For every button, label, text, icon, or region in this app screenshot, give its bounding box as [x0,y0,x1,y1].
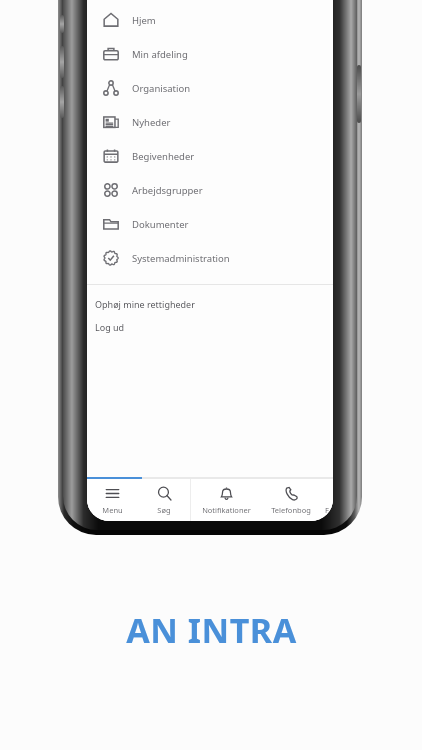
staticText: Arbejdsgrupper [132,184,203,197]
button[interactable]: Min afdeling [87,37,333,71]
button[interactable]: Dokumenter [87,207,333,241]
staticText: Søg [157,505,171,515]
button[interactable]: Nyheder [87,105,333,139]
button[interactable]: Menu [87,479,138,521]
button[interactable]: Søg [138,479,190,521]
button[interactable]: Notifikationer [191,479,261,521]
staticText: Menu [102,505,123,515]
staticText: F [325,505,329,515]
button[interactable]: Telefonbog [261,479,321,521]
staticText: Notifikationer [202,505,251,515]
staticText: Hjem [132,14,156,27]
staticText: Organisation [132,82,191,95]
button[interactable]: Begivenheder [87,139,333,173]
staticText: Nyheder [132,116,171,129]
button[interactable]: Log ud [87,315,333,338]
button[interactable]: Ophøj mine rettigheder [87,292,333,315]
button[interactable]: Arbejdsgrupper [87,173,333,207]
staticText: Systemadministration [132,252,230,265]
staticText: AN INTRA [126,607,297,653]
staticText: Log ud [95,321,125,333]
staticText: Ophøj mine rettigheder [95,298,195,310]
staticText: Telefonbog [271,505,311,515]
staticText: Begivenheder [132,150,195,163]
button[interactable]: Organisation [87,71,333,105]
button[interactable]: Hjem [87,3,333,37]
button[interactable]: F [321,479,333,521]
staticText: Dokumenter [132,218,189,231]
staticText: Min afdeling [132,48,188,61]
button[interactable]: Systemadministration [87,241,333,275]
